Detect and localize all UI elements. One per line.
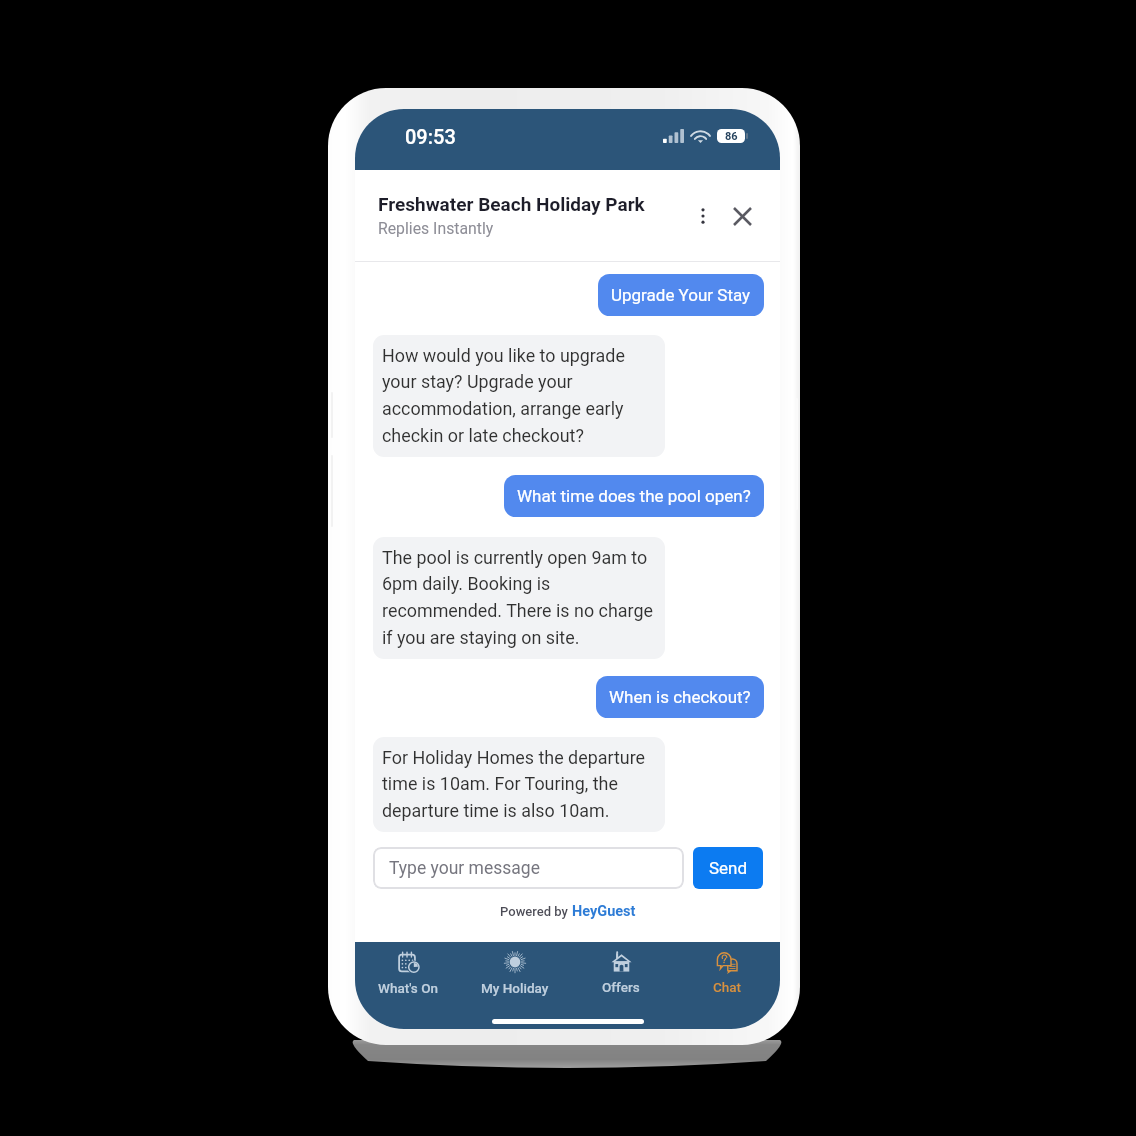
- button[interactable]: Offers: [568, 951, 674, 995]
- staticText: Send: [709, 858, 748, 878]
- staticText: Freshwater Beach Holiday Park: [378, 193, 645, 215]
- staticText: The pool is currently open 9am to 6pm da…: [382, 547, 656, 649]
- button[interactable]: The pool is currently open 9am to 6pm da…: [373, 537, 665, 659]
- staticText: HeyGuest: [572, 903, 636, 920]
- staticText: When is checkout?: [609, 687, 751, 707]
- button[interactable]: What's On: [355, 951, 462, 996]
- staticText: For Holiday Homes the departure time is …: [382, 747, 656, 822]
- staticText: Replies Instantly: [378, 219, 494, 238]
- button[interactable]: What time does the pool open?: [504, 475, 764, 517]
- staticText: Offers: [602, 979, 640, 995]
- staticText: 86: [725, 130, 738, 143]
- button[interactable]: Send: [693, 847, 763, 889]
- button[interactable]: Close: [723, 197, 761, 235]
- staticText: Type your message: [389, 858, 540, 879]
- button[interactable]: Chat: [674, 952, 780, 995]
- staticText: 09:53: [405, 125, 456, 148]
- staticText: Chat: [713, 979, 742, 995]
- staticText: What's On: [378, 980, 439, 996]
- staticText: My Holiday: [481, 980, 549, 996]
- staticText: What time does the pool open?: [517, 486, 751, 506]
- button[interactable]: Upgrade Your Stay: [598, 274, 764, 316]
- button[interactable]: How would you like to upgrade your stay?…: [373, 335, 665, 457]
- button[interactable]: My Holiday: [462, 951, 568, 996]
- staticText: How would you like to upgrade your stay?…: [382, 345, 656, 447]
- staticText: Powered by: [500, 904, 572, 919]
- staticText: Upgrade Your Stay: [611, 285, 751, 305]
- button[interactable]: More options: [685, 198, 721, 234]
- button[interactable]: Type your message: [373, 847, 684, 889]
- button[interactable]: When is checkout?: [596, 676, 764, 718]
- button[interactable]: For Holiday Homes the departure time is …: [373, 737, 665, 832]
